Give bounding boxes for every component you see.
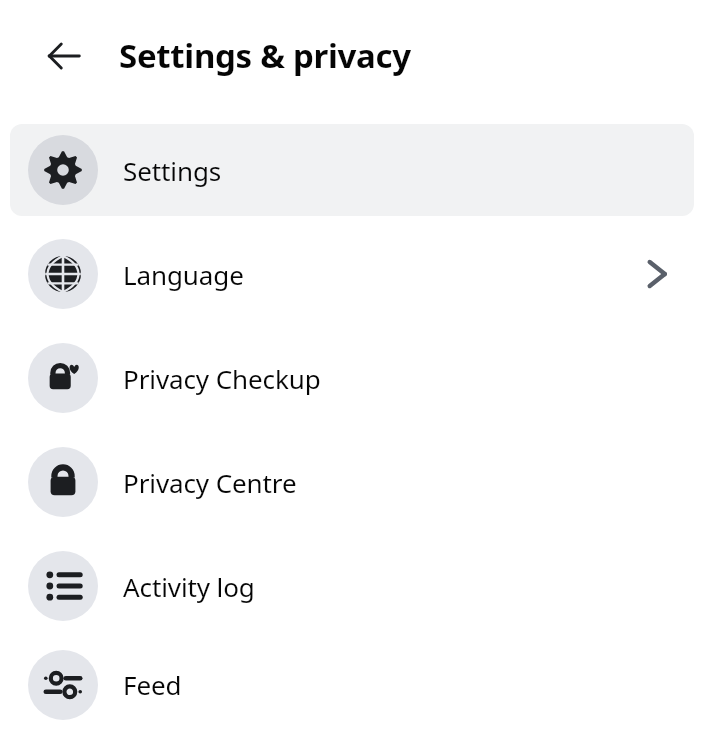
staticText: Settings & privacy — [119, 33, 411, 78]
staticText: Privacy Checkup — [123, 361, 321, 396]
staticText: Privacy Centre — [123, 465, 297, 500]
other: Privacy Checkup — [43, 358, 83, 398]
staticText: Settings — [123, 153, 222, 188]
button[interactable]: Language — [10, 228, 694, 320]
button[interactable]: Settings — [10, 124, 694, 216]
other: Language — [43, 254, 83, 294]
other: Activity log — [43, 566, 83, 606]
button[interactable]: Activity log — [10, 540, 694, 632]
button[interactable]: Feed — [10, 644, 694, 725]
other: Settings — [43, 150, 83, 190]
other: Privacy Centre — [43, 462, 83, 502]
staticText: Feed — [123, 667, 182, 702]
other: Feed — [43, 665, 83, 705]
staticText: Activity log — [123, 569, 255, 604]
button[interactable]: Privacy Checkup — [10, 332, 694, 424]
button[interactable]: Back — [30, 22, 98, 90]
staticText: Language — [123, 257, 244, 292]
button[interactable]: Privacy Centre — [10, 436, 694, 528]
